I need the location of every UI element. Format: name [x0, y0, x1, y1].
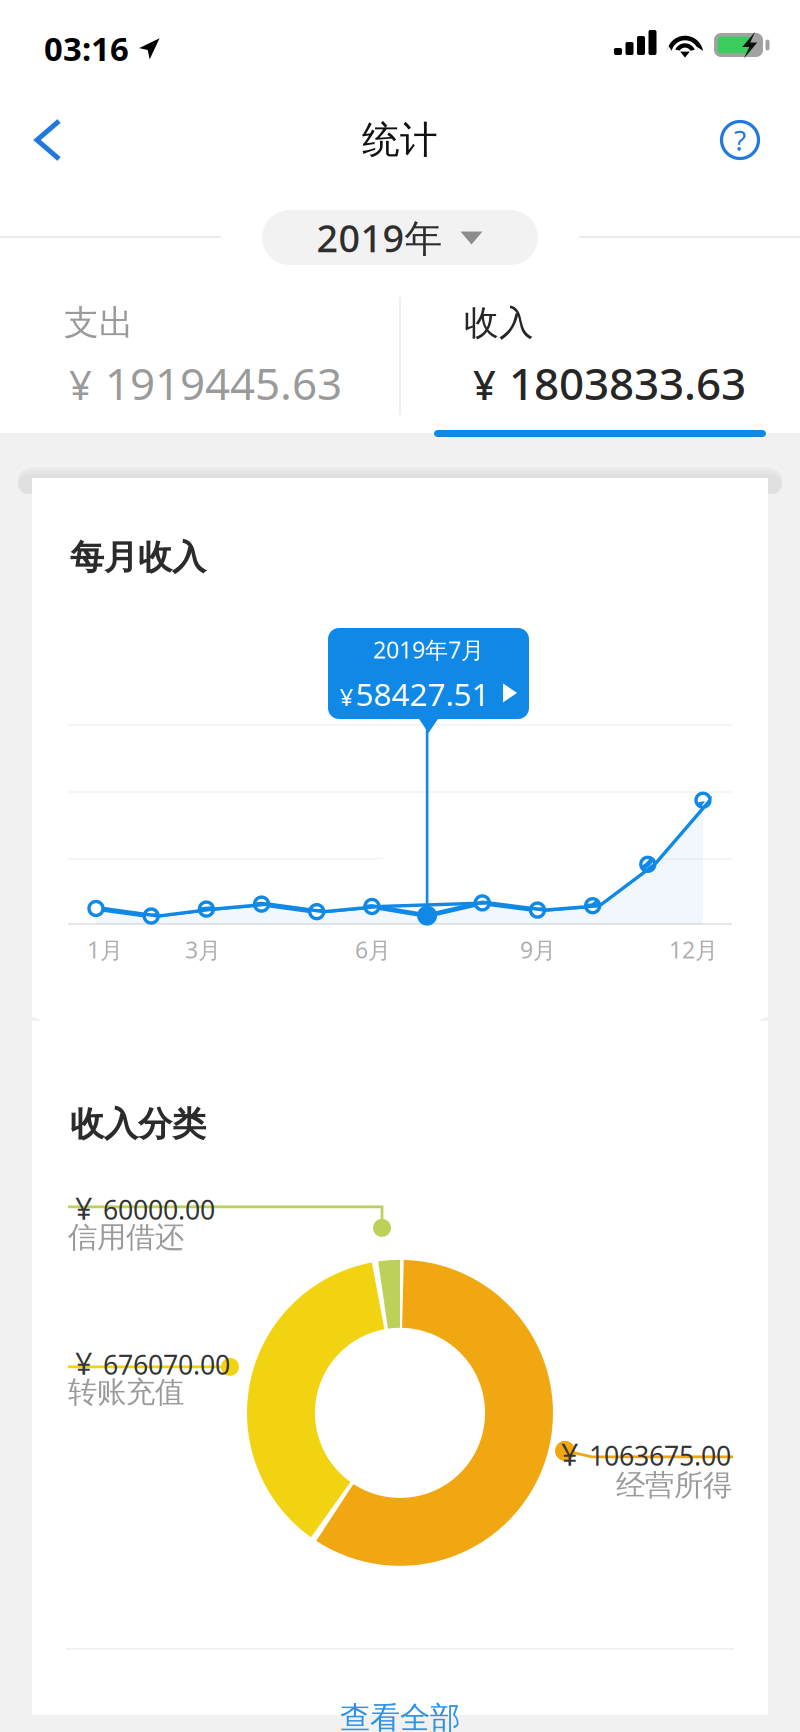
staticText: ¥	[69, 357, 92, 412]
staticText: 收入	[464, 301, 534, 345]
button[interactable]: 2019年	[262, 210, 538, 265]
staticText: 信用借还	[68, 1219, 184, 1256]
staticText: 03:16	[44, 26, 129, 71]
staticText: 1063675.00	[589, 1437, 731, 1473]
staticText: 12月	[669, 934, 718, 965]
staticText: 1803833.63	[509, 353, 746, 413]
staticText: 收入分类	[70, 1103, 206, 1146]
staticText: 支出	[64, 301, 134, 345]
staticText: 3月	[185, 934, 221, 965]
button[interactable]: 查看全部	[300, 1687, 500, 1732]
staticText: ¥	[75, 1187, 93, 1229]
button[interactable]: 支出	[0, 188, 400, 433]
button[interactable]: Back	[10, 102, 86, 178]
staticText: ¥	[561, 1433, 579, 1475]
staticText: 676070.00	[103, 1346, 230, 1382]
staticText: 统计	[362, 116, 438, 164]
staticText: 60000.00	[103, 1191, 215, 1227]
staticText: 9月	[520, 934, 556, 965]
staticText: 每月收入	[70, 536, 206, 579]
staticText: 1月	[87, 934, 123, 965]
button[interactable]: 收入	[400, 188, 800, 433]
staticText: ¥	[75, 1342, 93, 1384]
staticText: 6月	[355, 934, 391, 965]
staticText: 转账充值	[68, 1374, 184, 1411]
button[interactable]: Help	[709, 109, 771, 171]
staticText: 2019年7月	[373, 634, 484, 665]
staticText: 1919445.63	[105, 353, 342, 413]
staticText: ¥	[473, 357, 496, 412]
staticText: 查看全部	[340, 1699, 460, 1732]
staticText: 2019年	[316, 212, 442, 263]
staticText: 经营所得	[616, 1467, 732, 1504]
staticText: ¥	[339, 680, 353, 713]
staticText: 58427.51	[355, 672, 489, 715]
staticText: ?	[734, 121, 746, 159]
